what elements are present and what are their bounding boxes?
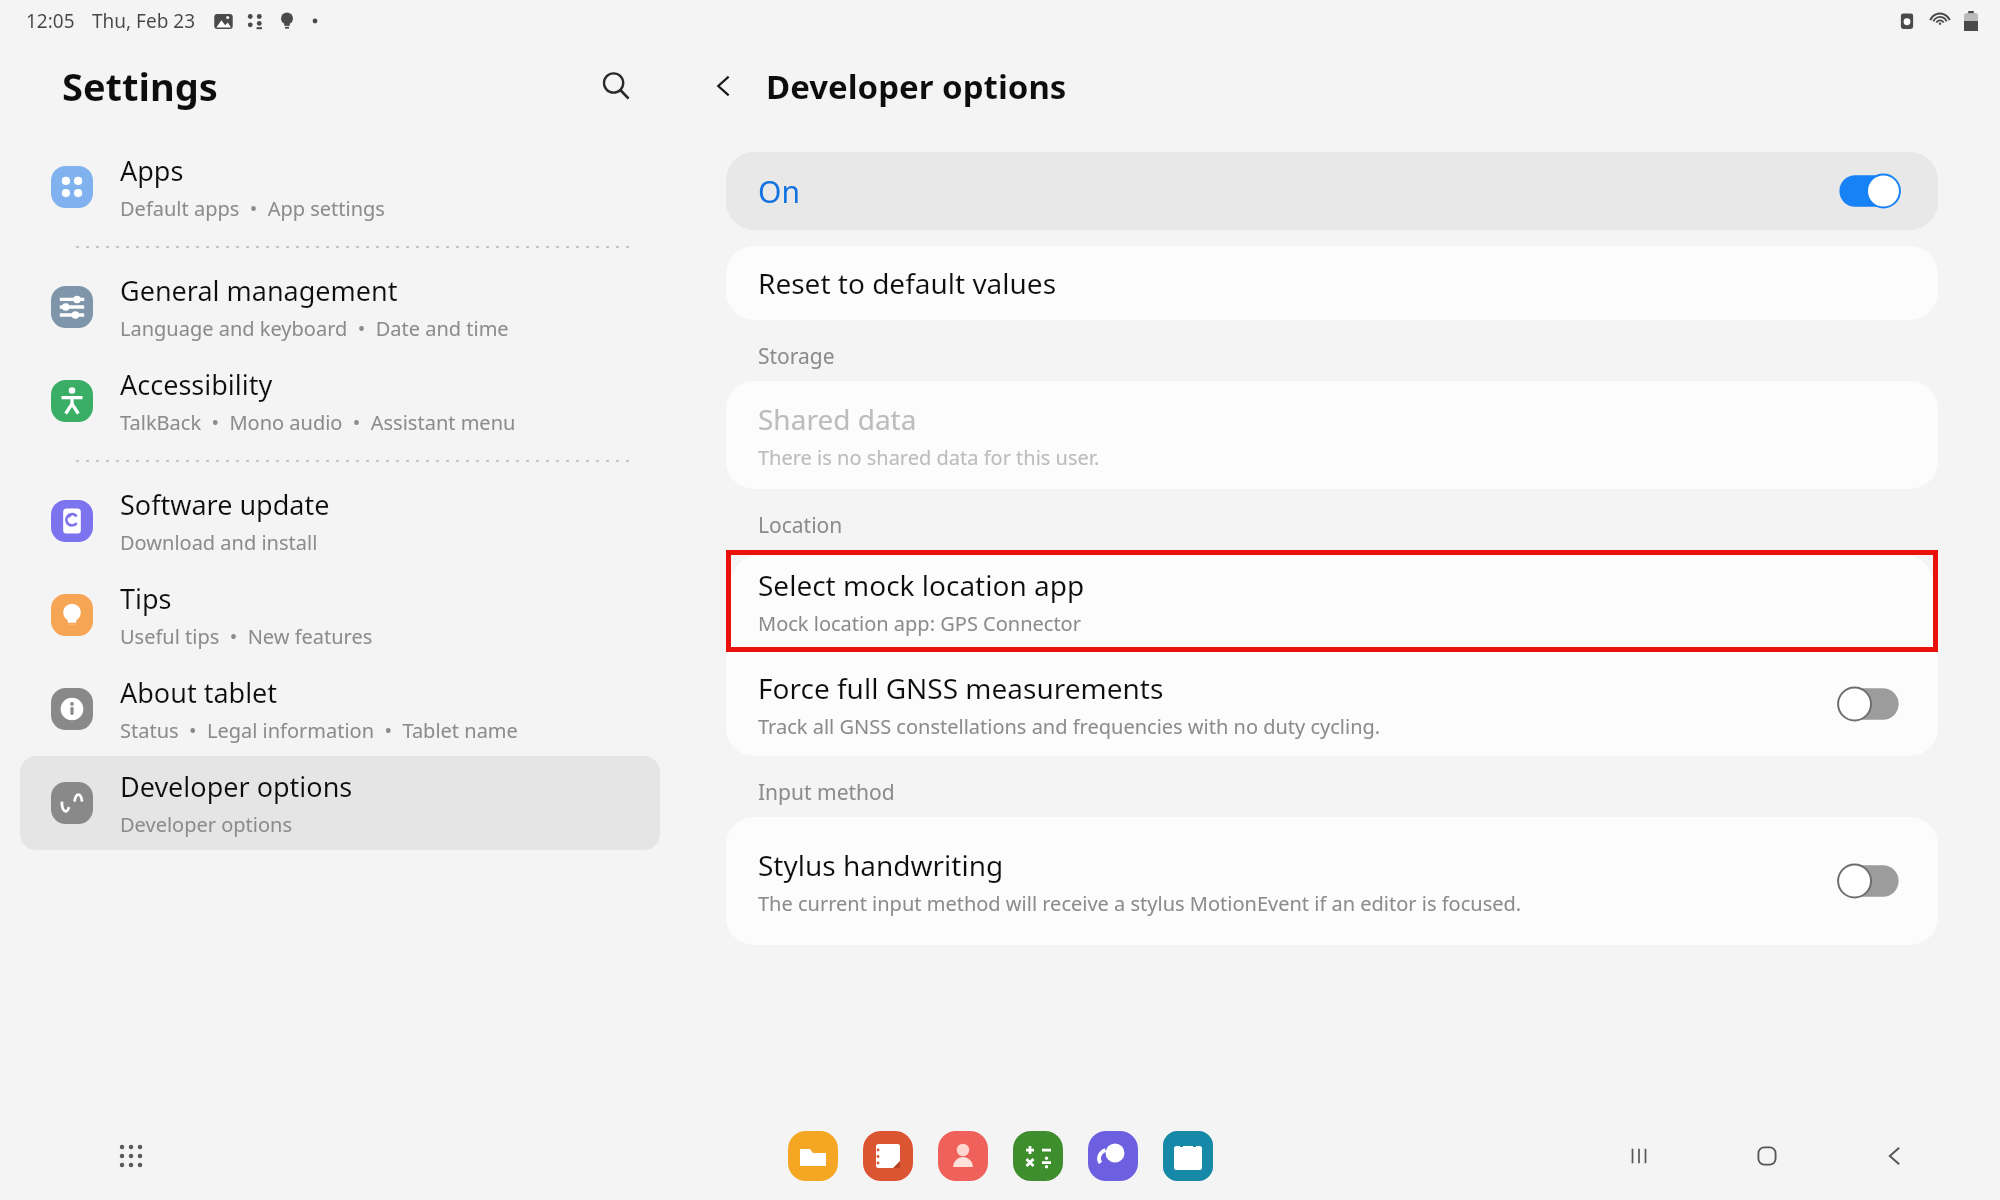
staticText: Mock location app: GPS Connector	[758, 610, 1081, 637]
staticText: Location	[758, 511, 843, 540]
button[interactable]: Recents	[1612, 1129, 1666, 1183]
staticText: Developer options	[766, 64, 1067, 109]
staticText: General management	[120, 272, 398, 309]
staticText: Settings	[62, 60, 218, 112]
staticText: Apps	[120, 152, 184, 189]
staticText: On	[758, 171, 800, 212]
staticText: Force full GNSS measurements	[758, 669, 1164, 707]
button[interactable]: Developer options	[20, 756, 660, 850]
button[interactable]: Toggle off	[1832, 859, 1906, 903]
button[interactable]: Calculator	[1012, 1130, 1064, 1182]
button[interactable]: Shared data	[726, 381, 1938, 489]
button[interactable]: Back	[696, 58, 752, 114]
staticText: Tips	[120, 580, 172, 617]
staticText: Storage	[758, 342, 835, 371]
staticText: Track all GNSS constellations and freque…	[758, 713, 1381, 740]
button[interactable]: Calendar	[1162, 1130, 1214, 1182]
staticText: About tablet	[120, 674, 278, 711]
button[interactable]: Stylus handwriting	[726, 817, 1938, 945]
staticText: The current input method will receive a …	[758, 890, 1522, 917]
button[interactable]: Toggle on	[1832, 169, 1906, 213]
staticText: TalkBack • Mono audio • Assistant menu	[120, 409, 516, 436]
staticText: 12:05	[26, 8, 75, 34]
button[interactable]: Notes	[862, 1130, 914, 1182]
button[interactable]: Internet	[1087, 1130, 1139, 1182]
button[interactable]: Apps	[20, 140, 660, 234]
button[interactable]: Apps	[104, 1129, 158, 1183]
staticText: Thu, Feb 23	[92, 8, 196, 34]
staticText: Stylus handwriting	[758, 846, 1004, 884]
button[interactable]: Search	[588, 58, 644, 114]
button[interactable]: Select mock location app	[731, 555, 1933, 647]
button[interactable]: About tablet	[20, 662, 660, 756]
staticText: Shared data	[758, 400, 917, 438]
button[interactable]: General management	[20, 260, 660, 354]
staticText: Software update	[120, 486, 330, 523]
staticText: Select mock location app	[758, 566, 1085, 604]
staticText: Input method	[758, 778, 895, 807]
button[interactable]: Home	[1740, 1129, 1794, 1183]
button[interactable]: Accessibility	[20, 354, 660, 448]
staticText: There is no shared data for this user.	[758, 444, 1100, 471]
staticText: Reset to default values	[758, 264, 1057, 302]
button[interactable]: Contacts	[937, 1130, 989, 1182]
button[interactable]: Tips	[20, 568, 660, 662]
staticText: Language and keyboard • Date and time	[120, 315, 509, 342]
staticText: Accessibility	[120, 366, 273, 403]
button[interactable]: Back	[1868, 1129, 1922, 1183]
staticText: Useful tips • New features	[120, 623, 373, 650]
staticText: Download and install	[120, 529, 318, 556]
staticText: Developer options	[120, 768, 353, 805]
button[interactable]: My Files	[787, 1130, 839, 1182]
staticText: Default apps • App settings	[120, 195, 385, 222]
button[interactable]: Software update	[20, 474, 660, 568]
button[interactable]: Toggle off	[1832, 682, 1906, 726]
button[interactable]: Reset to default values	[726, 246, 1938, 320]
staticText: Developer options	[120, 811, 293, 838]
staticText: Status • Legal information • Tablet name	[120, 717, 518, 744]
button[interactable]: On	[726, 152, 1938, 230]
button[interactable]: Force full GNSS measurements	[726, 652, 1938, 756]
